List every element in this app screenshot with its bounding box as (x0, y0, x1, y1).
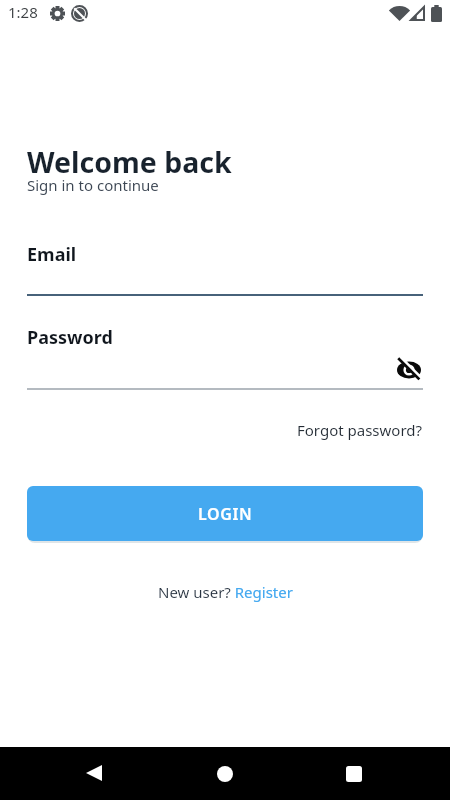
staticText: Email (27, 242, 77, 267)
button[interactable] (217, 766, 233, 782)
button[interactable]: Forgot password? (297, 420, 423, 440)
button[interactable] (397, 357, 421, 381)
button[interactable]: LOGIN (27, 486, 423, 541)
staticText: LOGIN (198, 503, 253, 525)
staticText: New user? Register (158, 582, 293, 602)
staticText: Sign in to continue (27, 175, 159, 195)
button[interactable]: New user? Register (158, 582, 293, 602)
staticText: Password (27, 325, 113, 350)
staticText: Forgot password? (297, 420, 423, 440)
staticText: Welcome back (27, 143, 232, 182)
staticText: 1:28 (8, 2, 38, 22)
button[interactable] (86, 765, 102, 781)
button[interactable] (346, 766, 362, 782)
